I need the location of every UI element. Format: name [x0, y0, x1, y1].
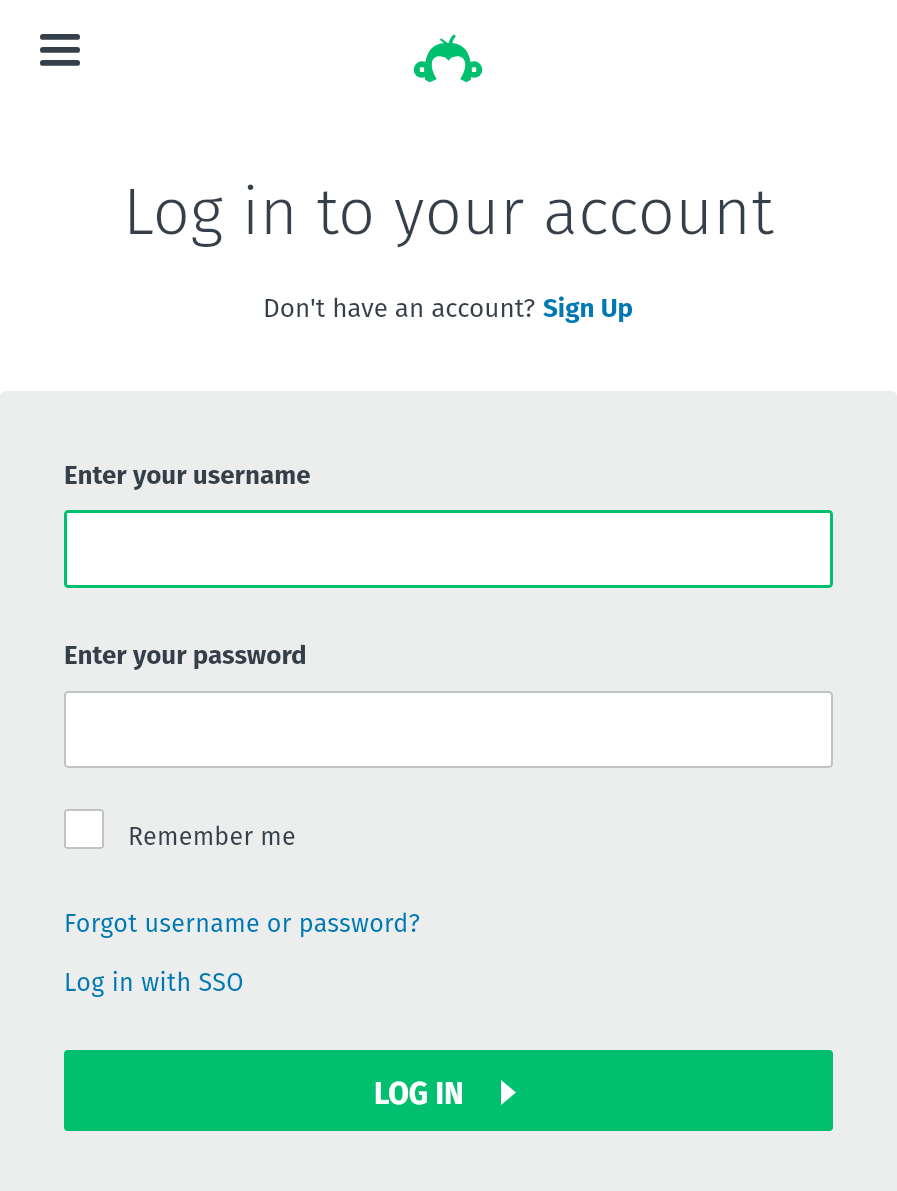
staticText: Log in with SSO: [64, 968, 244, 998]
staticText: Enter your password: [64, 640, 307, 671]
staticText: LOG IN: [374, 1076, 464, 1112]
staticText: Log in to your account: [0, 173, 897, 251]
staticText: Don't have an account?: [263, 293, 543, 324]
button[interactable]: [64, 691, 833, 768]
staticText: Forgot username or password?: [64, 909, 421, 939]
button[interactable]: Open navigation menu: [28, 22, 92, 78]
staticText: Remember me: [128, 822, 296, 852]
button[interactable]: Forgot username or password?: [64, 903, 434, 945]
button[interactable]: LOG IN: [64, 1050, 833, 1131]
button[interactable]: Sign Up: [543, 293, 634, 324]
staticText: Sign Up: [543, 293, 634, 324]
button[interactable]: Log in with SSO: [64, 962, 254, 1004]
button[interactable]: Remember me: [64, 805, 314, 853]
button[interactable]: [64, 510, 833, 588]
staticText: Enter your username: [64, 460, 311, 491]
